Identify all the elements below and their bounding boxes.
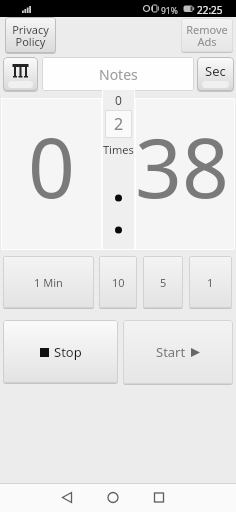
staticText: Notes [99, 65, 138, 84]
staticText: 5 [160, 275, 167, 290]
button[interactable]: Notes [42, 57, 194, 91]
button[interactable]: 38 [136, 99, 234, 249]
button[interactable]: 2 [105, 110, 132, 138]
button[interactable] [78, 483, 157, 512]
button[interactable]: 1 Min [3, 256, 94, 308]
staticText: 1 [207, 275, 214, 290]
button[interactable] [157, 483, 236, 512]
staticText: 22:25 [197, 3, 223, 17]
button[interactable]: Start [123, 320, 233, 384]
staticText: 10 [112, 275, 125, 290]
button[interactable]: 10 [99, 256, 137, 308]
staticText: 91% [161, 5, 178, 17]
staticText: Stop [54, 343, 82, 361]
staticText: 2 [114, 113, 124, 135]
staticText: Sec [205, 62, 226, 80]
button[interactable]: 5 [143, 256, 183, 308]
staticText: 1 Min [34, 275, 63, 290]
button[interactable]: 0 [2, 99, 101, 249]
button[interactable]: 1 [189, 256, 232, 308]
staticText: Start [156, 343, 186, 361]
staticText: Privacy Policy [12, 22, 49, 49]
staticText: 0 [28, 110, 75, 222]
button[interactable]: Privacy Policy [5, 17, 56, 53]
button[interactable] [3, 57, 38, 91]
staticText: 38 [135, 110, 229, 222]
staticText: Remove Ads [186, 22, 228, 49]
staticText: Times [103, 142, 134, 157]
staticText: 0 [115, 92, 122, 108]
button[interactable]: Sec [197, 57, 234, 91]
button[interactable]: Stop [3, 320, 118, 383]
button[interactable] [0, 483, 78, 512]
button[interactable]: Remove Ads [181, 18, 233, 52]
